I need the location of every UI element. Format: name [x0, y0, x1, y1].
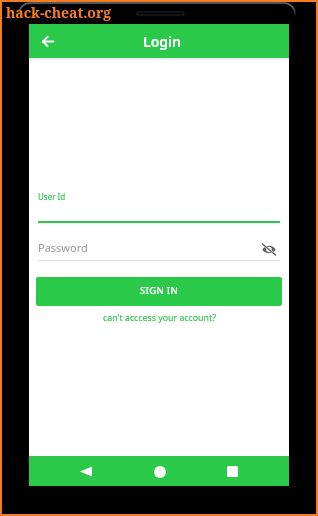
button[interactable]: Password [29, 237, 289, 257]
staticText: Password [38, 240, 260, 255]
staticText: User Id [38, 191, 66, 202]
button[interactable]: SIGN IN [36, 277, 282, 306]
staticText: hack-cheat.org [6, 3, 112, 22]
staticText: SIGN IN [140, 284, 179, 297]
button[interactable]: Home [147, 459, 172, 484]
button[interactable]: Back [35, 28, 61, 54]
button[interactable]: User Id [29, 191, 289, 223]
button[interactable]: Recent apps [220, 459, 245, 484]
button[interactable]: Back [73, 459, 98, 484]
button[interactable]: can't acccess your account? [103, 312, 216, 324]
staticText: Login [143, 32, 181, 51]
button[interactable]: Show password [259, 239, 279, 259]
